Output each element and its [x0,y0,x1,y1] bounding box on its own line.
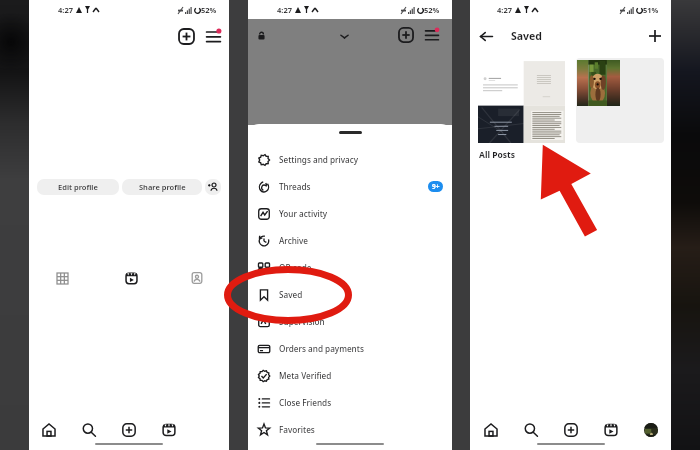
staticText: 52% [424,5,440,15]
button[interactable]: Your activity [248,200,452,227]
button[interactable]: Create [175,25,197,47]
button[interactable]: Tagged [187,268,207,288]
button[interactable]: Reels [591,417,631,443]
button[interactable]: QR code [248,254,452,281]
staticText: Share profile [139,182,186,192]
staticText: Your activity [279,208,328,219]
button[interactable]: Meta Verified [248,362,452,389]
button[interactable]: Create [396,25,416,45]
button[interactable]: Reels [121,268,141,288]
button[interactable]: All Posts collection [478,59,565,143]
staticText: Favorites [279,424,315,435]
staticText: Archive [279,235,309,246]
staticText: Close Friends [279,397,332,408]
button[interactable]: Back [476,26,496,46]
button[interactable]: Search [69,417,109,443]
button[interactable]: New collection [645,26,665,46]
button[interactable]: Close Friends [248,389,452,416]
button[interactable]: Threads [248,173,452,200]
button[interactable]: Grid [52,268,72,288]
button[interactable]: Create [109,417,149,443]
staticText: Orders and payments [279,343,364,354]
staticText: 9+ [432,182,440,191]
button[interactable]: Discover people [205,179,221,195]
staticText: 4:27 [277,5,292,15]
staticText: Saved [279,289,303,300]
button[interactable]: Orders and payments [248,335,452,362]
staticText: Saved [511,29,542,43]
button[interactable]: Create [551,417,591,443]
button[interactable]: Share profile [122,179,202,195]
staticText: 4:27 [497,5,512,15]
staticText: Meta Verified [279,370,332,381]
staticText: Supervision [279,316,325,327]
button[interactable]: Private account [252,26,270,44]
button[interactable]: Home [470,417,511,443]
button[interactable]: Switch account [335,27,353,45]
staticText: 4:27 [58,5,73,15]
button[interactable]: Settings and privacy [248,146,452,173]
button[interactable]: Favorites [248,416,452,443]
button[interactable]: Profile [631,417,671,443]
button[interactable]: Menu [422,25,442,45]
button[interactable]: Reels [149,417,189,443]
staticText: 52% [201,5,217,15]
staticText: Edit profile [58,182,98,192]
staticText: Settings and privacy [279,154,359,165]
button[interactable]: Supervision [248,308,452,335]
staticText: QR code [279,262,312,273]
button[interactable]: Saved [248,281,452,308]
button[interactable]: Home [29,417,69,443]
button[interactable]: Edit profile [37,179,119,195]
staticText: All Posts [479,149,515,161]
button[interactable]: Menu [202,25,224,47]
button[interactable]: Search [511,417,551,443]
staticText: Threads [279,181,311,192]
staticText: 51% [643,5,659,15]
button[interactable]: Saved collection [576,58,664,143]
button[interactable]: Archive [248,227,452,254]
